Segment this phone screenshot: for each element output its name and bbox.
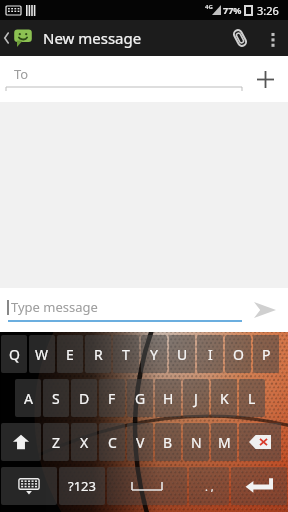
staticText: New message (43, 28, 142, 48)
button[interactable]: F (99, 379, 125, 417)
button[interactable]: J (183, 379, 209, 417)
button[interactable]: I (197, 335, 223, 373)
button[interactable]: Hide keyboard (1, 467, 57, 505)
button[interactable]: Space (107, 467, 187, 505)
staticText: E (66, 345, 74, 364)
button[interactable]: W (29, 335, 55, 373)
staticText: X (80, 433, 89, 452)
staticText: C (108, 433, 117, 452)
staticText: V (136, 433, 145, 452)
button[interactable]: Send (242, 288, 288, 332)
staticText: W (35, 345, 49, 364)
button[interactable]: More options (258, 23, 288, 53)
button[interactable]: Attach (222, 20, 258, 56)
button[interactable]: Add recipient (242, 56, 288, 102)
button[interactable]: To (6, 65, 242, 93)
staticText: L (248, 389, 256, 408)
staticText: To (14, 65, 29, 83)
staticText: R (94, 345, 103, 364)
staticText: Z (52, 433, 61, 452)
button[interactable]: ?123 (59, 467, 105, 505)
button[interactable]: Shift (1, 423, 41, 461)
staticText: ?123 (68, 477, 96, 495)
button[interactable]: Enter (231, 467, 287, 505)
staticText: . , (205, 479, 214, 494)
button[interactable]: R (85, 335, 111, 373)
button[interactable]: Backspace (239, 423, 281, 461)
staticText: N (191, 433, 202, 452)
button[interactable]: S (43, 379, 69, 417)
button[interactable]: L (239, 379, 265, 417)
staticText: Y (150, 345, 158, 364)
button[interactable]: . , (189, 467, 229, 505)
button[interactable]: C (99, 423, 125, 461)
button[interactable]: T (113, 335, 139, 373)
staticText: Q (9, 345, 20, 364)
button[interactable]: Z (43, 423, 69, 461)
button[interactable]: H (155, 379, 181, 417)
staticText: O (233, 345, 244, 364)
staticText: K (220, 389, 229, 408)
button[interactable]: G (127, 379, 153, 417)
staticText: T (122, 345, 130, 364)
staticText: 77% (223, 4, 242, 16)
button[interactable]: K (211, 379, 237, 417)
staticText: U (177, 345, 188, 364)
staticText: P (262, 345, 271, 364)
staticText: H (163, 389, 174, 408)
staticText: A (24, 389, 33, 408)
button[interactable]: Y (141, 335, 167, 373)
staticText: D (79, 389, 90, 408)
button[interactable]: O (225, 335, 251, 373)
staticText: B (163, 433, 173, 452)
button[interactable]: E (57, 335, 83, 373)
staticText: M (218, 433, 231, 452)
staticText: J (194, 389, 198, 408)
button[interactable]: N (183, 423, 209, 461)
button[interactable]: X (71, 423, 97, 461)
button[interactable]: Type message (8, 298, 242, 323)
staticText: Type message (11, 298, 98, 316)
button[interactable]: A (15, 379, 41, 417)
button[interactable]: U (169, 335, 195, 373)
staticText: I (208, 345, 213, 364)
button[interactable]: M (211, 423, 237, 461)
staticText: F (108, 389, 116, 408)
button[interactable]: V (127, 423, 153, 461)
button[interactable]: D (71, 379, 97, 417)
staticText: 3:26 (257, 3, 279, 18)
staticText: 4G (205, 3, 213, 11)
button[interactable]: P (253, 335, 279, 373)
staticText: S (52, 389, 60, 408)
button[interactable]: B (155, 423, 181, 461)
button[interactable] (0, 28, 37, 48)
button[interactable]: Q (1, 335, 27, 373)
staticText: G (135, 389, 146, 408)
